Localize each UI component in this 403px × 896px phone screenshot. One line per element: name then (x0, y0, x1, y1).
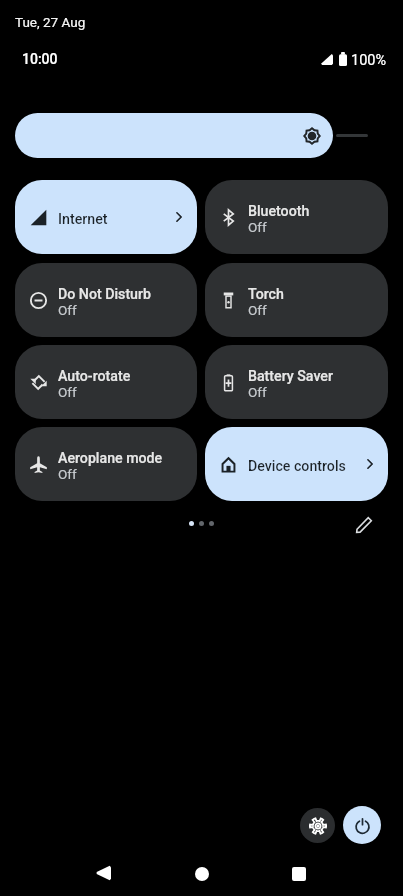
button[interactable]: Settings (300, 808, 335, 843)
staticText: 100% (351, 52, 387, 69)
button[interactable]: Bluetooth (205, 180, 388, 254)
staticText: Device controls (248, 458, 346, 475)
button[interactable]: Do Not Disturb (15, 263, 197, 337)
button[interactable]: Back (89, 858, 119, 888)
staticText: 10:00 (22, 51, 58, 67)
staticText: Internet (58, 211, 108, 228)
staticText: Off (248, 302, 267, 318)
button[interactable]: Battery Saver (205, 345, 388, 419)
button[interactable]: Edit (350, 510, 378, 538)
staticText: Torch (248, 286, 284, 303)
staticText: Off (58, 466, 77, 482)
staticText: Off (248, 219, 267, 235)
staticText: Do Not Disturb (58, 286, 151, 303)
button[interactable]: Internet (15, 180, 197, 254)
staticText: Auto-rotate (58, 368, 131, 385)
button[interactable]: Recents (284, 859, 314, 889)
button[interactable]: Device controls (205, 427, 388, 501)
staticText: Off (248, 384, 267, 400)
button[interactable]: Brightness (15, 113, 333, 158)
button[interactable]: Home (187, 859, 217, 889)
button[interactable]: Torch (205, 263, 388, 337)
staticText: Off (58, 302, 77, 318)
button[interactable]: Auto-rotate (15, 345, 197, 419)
staticText: Tue, 27 Aug (15, 14, 86, 30)
staticText: Battery Saver (248, 368, 333, 385)
staticText: Bluetooth (248, 203, 310, 220)
staticText: Off (58, 384, 77, 400)
button[interactable]: Power (343, 806, 381, 844)
button[interactable]: Aeroplane mode (15, 427, 197, 501)
staticText: Aeroplane mode (58, 450, 163, 467)
